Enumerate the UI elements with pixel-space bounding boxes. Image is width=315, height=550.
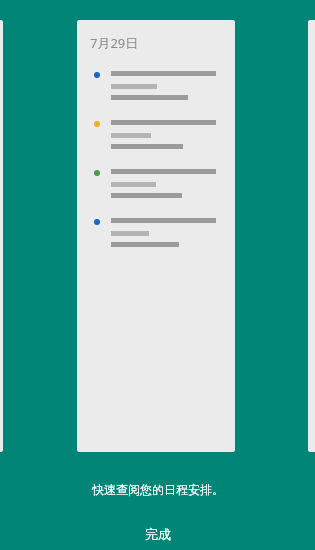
button[interactable]: 完成 — [123, 522, 193, 546]
staticText: 7月29日 — [90, 34, 139, 52]
button[interactable] — [90, 163, 227, 198]
button[interactable] — [90, 114, 227, 149]
button[interactable] — [90, 212, 227, 247]
button[interactable] — [90, 65, 227, 100]
button[interactable]: 7月29日 — [77, 20, 235, 452]
staticText: 快速查阅您的日程安排。 — [92, 482, 224, 497]
staticText: 完成 — [145, 526, 171, 542]
